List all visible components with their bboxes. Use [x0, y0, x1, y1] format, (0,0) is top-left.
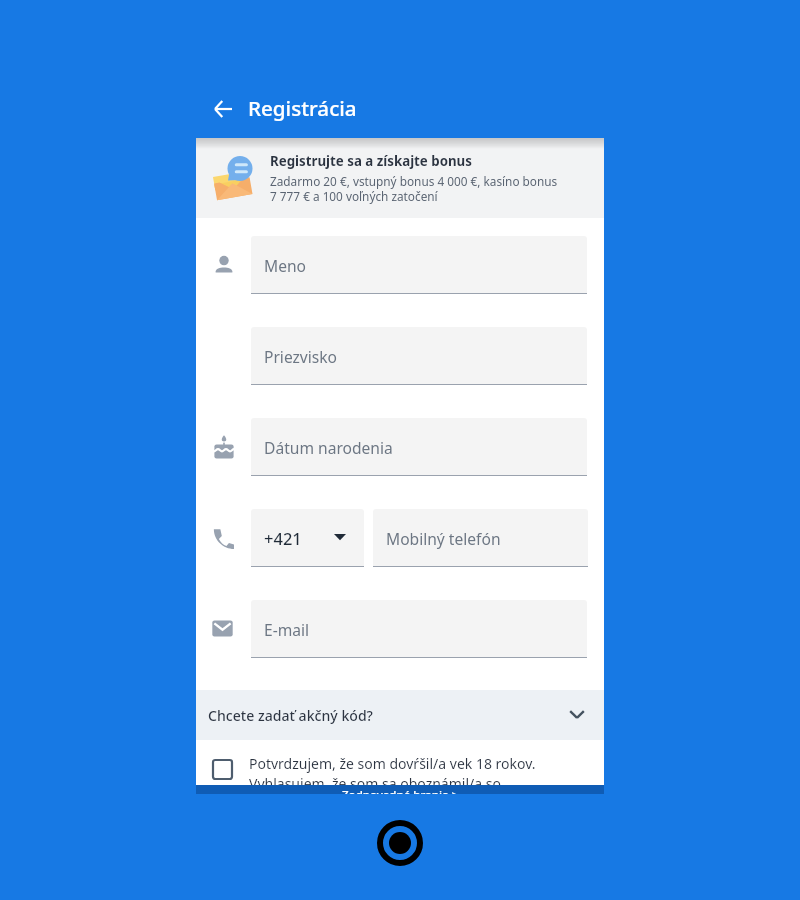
- button[interactable]: Back: [202, 88, 244, 130]
- button[interactable]: Dátum narodenia: [251, 418, 587, 476]
- button[interactable]: E-mail: [251, 600, 587, 658]
- staticText: Zodpovedné hranie >: [342, 787, 459, 794]
- staticText: Chcete zadať akčný kód?: [208, 706, 373, 725]
- staticText: Mobilný telefón: [386, 528, 501, 549]
- button[interactable]: Zodpovedné hranie >: [196, 785, 604, 794]
- button[interactable]: +421: [251, 509, 364, 567]
- button[interactable]: Home: [377, 820, 423, 866]
- staticText: Registrujte sa a získajte bonus: [270, 152, 472, 170]
- button[interactable]: Potvrdzujem, že som dovŕšil/a vek 18 rok…: [196, 754, 604, 793]
- button[interactable]: Priezvisko: [251, 327, 587, 385]
- staticText: Meno: [264, 255, 307, 276]
- staticText: Registrácia: [248, 94, 357, 122]
- staticText: +421: [264, 527, 302, 549]
- staticText: E-mail: [264, 619, 310, 640]
- staticText: Potvrdzujem, že som dovŕšil/a vek 18 rok…: [249, 754, 536, 793]
- staticText: Zadarmo 20 €, vstupný bonus 4 000 €, kas…: [270, 173, 558, 205]
- button[interactable]: Mobilný telefón: [373, 509, 588, 567]
- staticText: Dátum narodenia: [264, 437, 393, 458]
- button[interactable]: Chcete zadať akčný kód?: [196, 690, 604, 740]
- staticText: Priezvisko: [264, 346, 338, 367]
- button[interactable]: Meno: [251, 236, 587, 294]
